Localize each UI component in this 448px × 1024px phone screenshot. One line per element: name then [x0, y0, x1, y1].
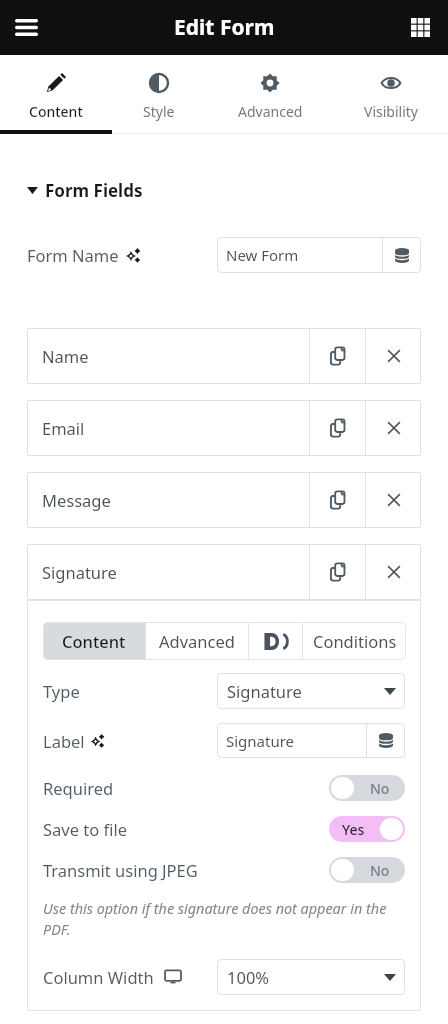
staticText: Style: [143, 102, 175, 121]
staticText: Advanced: [238, 102, 303, 121]
staticText: 100%: [227, 966, 270, 988]
staticText: No: [370, 861, 390, 880]
staticText: Column Width: [43, 966, 154, 988]
button[interactable]: Dynamic tags: [367, 723, 405, 758]
button[interactable]: Duplicate Message: [310, 472, 365, 528]
button[interactable]: Menu: [0, 0, 53, 55]
staticText: Label: [43, 730, 85, 752]
button[interactable]: Duplicate Name: [310, 328, 365, 384]
button[interactable]: No: [329, 857, 405, 883]
staticText: No: [370, 779, 390, 798]
button[interactable]: Duplicate Signature: [310, 544, 365, 600]
staticText: Message: [42, 489, 111, 511]
staticText: Signature: [226, 731, 295, 751]
button[interactable]: Advanced: [206, 55, 334, 134]
staticText: Edit Form: [174, 13, 275, 42]
button[interactable]: Signature: [27, 544, 309, 600]
staticText: Yes: [342, 820, 365, 839]
button[interactable]: Dynamic tag: [249, 622, 302, 660]
button[interactable]: Message: [27, 472, 309, 528]
staticText: Email: [42, 417, 85, 439]
button[interactable]: Name: [27, 328, 309, 384]
button[interactable]: Content: [0, 55, 112, 134]
staticText: Name: [42, 345, 89, 367]
button[interactable]: Signature: [217, 723, 366, 758]
staticText: New Form: [226, 245, 299, 265]
button[interactable]: Advanced: [146, 622, 248, 660]
staticText: Content: [29, 102, 83, 121]
staticText: Use this option if the signature does no…: [43, 899, 405, 940]
staticText: Transmit using JPEG: [43, 859, 198, 881]
staticText: Signature: [42, 561, 117, 583]
button[interactable]: Yes: [329, 816, 405, 842]
staticText: Conditions: [313, 630, 397, 652]
button[interactable]: 100%: [217, 959, 405, 995]
button[interactable]: Dynamic tags: [383, 237, 421, 273]
staticText: Signature: [227, 680, 302, 702]
staticText: Save to file: [43, 818, 128, 840]
button[interactable]: Remove Email: [366, 400, 421, 456]
staticText: Form Name: [27, 244, 119, 266]
staticText: Advanced: [159, 630, 235, 652]
staticText: Form Fields: [45, 179, 143, 202]
button[interactable]: Duplicate Email: [310, 400, 365, 456]
button[interactable]: No: [329, 775, 405, 801]
staticText: Visibility: [364, 102, 418, 121]
button[interactable]: Remove Name: [366, 328, 421, 384]
button[interactable]: Content: [43, 622, 145, 660]
button[interactable]: Signature: [217, 673, 405, 709]
staticText: Type: [43, 680, 80, 702]
staticText: Required: [43, 777, 114, 799]
button[interactable]: New Form: [217, 237, 382, 273]
button[interactable]: Visibility: [334, 55, 448, 134]
staticText: Content: [62, 630, 126, 652]
button[interactable]: Apps: [393, 0, 448, 55]
button[interactable]: Conditions: [303, 622, 406, 660]
button[interactable]: Email: [27, 400, 309, 456]
button[interactable]: Remove Signature: [366, 544, 421, 600]
button[interactable]: Style: [112, 55, 206, 134]
button[interactable]: Remove Message: [366, 472, 421, 528]
